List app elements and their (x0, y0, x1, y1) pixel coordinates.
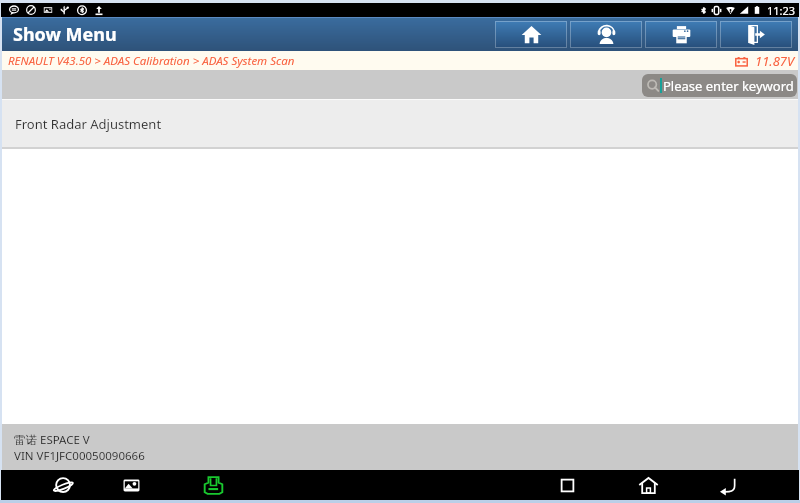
button[interactable]: Exit (720, 21, 792, 48)
staticText: Please enter keyword (663, 77, 794, 95)
staticText: 11:23 (767, 3, 796, 17)
button[interactable]: Please enter keyword (642, 74, 797, 97)
button[interactable]: Print (645, 21, 717, 48)
button[interactable]: Front Radar Adjustment (2, 100, 798, 147)
button[interactable]: Gallery (111, 470, 151, 500)
staticText: Front Radar Adjustment (15, 115, 162, 133)
button[interactable]: Recents (547, 470, 587, 500)
button[interactable]: Browser (43, 470, 83, 500)
button[interactable]: Customer Support (570, 21, 642, 48)
staticText: 11.87V (755, 52, 795, 70)
button[interactable]: Back (707, 470, 747, 500)
staticText: 雷诺 ESPACE V (14, 432, 90, 448)
staticText: VIN VF1JFC00050090666 (14, 448, 145, 464)
button[interactable]: VCI Connection (193, 470, 233, 500)
button[interactable]: Home (628, 470, 668, 500)
staticText: RENAULT V43.50 > ADAS Calibration > ADAS… (8, 53, 295, 69)
button[interactable]: Home (495, 21, 567, 48)
staticText: Show Menu (13, 22, 117, 47)
